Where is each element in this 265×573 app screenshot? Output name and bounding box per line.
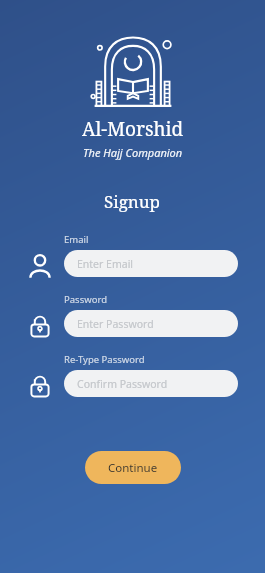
other: Password	[27, 373, 53, 399]
staticText: Signup	[104, 190, 161, 213]
staticText: Continue	[108, 460, 158, 476]
staticText: Enter Email	[77, 257, 134, 271]
other: Account	[27, 253, 53, 279]
staticText: Al-Morshid	[82, 116, 184, 142]
staticText: Password	[64, 293, 107, 306]
staticText: Email	[64, 233, 89, 246]
button[interactable]: Continue	[85, 451, 181, 484]
staticText: Confirm Password	[77, 377, 168, 391]
button[interactable]: Enter Password	[64, 310, 238, 337]
button[interactable]: Confirm Password	[64, 370, 238, 397]
button[interactable]: Enter Email	[64, 250, 238, 277]
other: Password	[27, 313, 53, 339]
staticText: The Hajj Companion	[83, 145, 183, 160]
staticText: Re-Type Password	[64, 353, 145, 366]
staticText: Enter Password	[77, 317, 154, 331]
